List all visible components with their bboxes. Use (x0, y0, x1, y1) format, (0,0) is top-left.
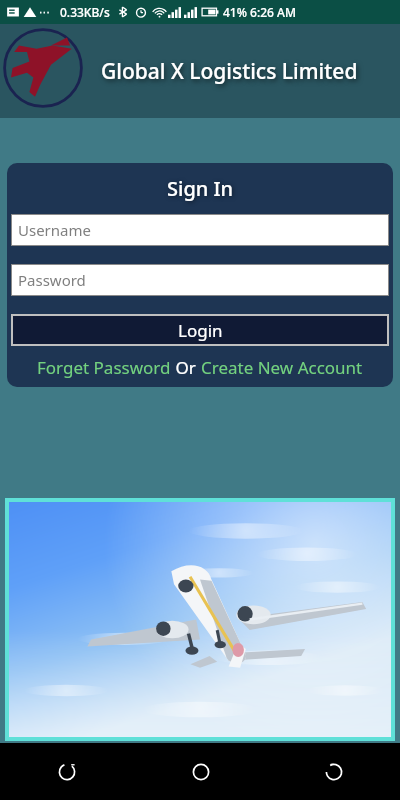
button[interactable]: Password (12, 265, 388, 295)
button[interactable]: Recents (0, 743, 134, 800)
staticText: ⋯ (39, 6, 50, 19)
staticText: Username (18, 220, 91, 240)
staticText: Sign In (167, 175, 234, 202)
staticText: Global X Logistics Limited (101, 57, 358, 86)
staticText: 41% 6:26 AM (223, 4, 296, 20)
staticText: Create New Account (201, 356, 363, 379)
button[interactable]: Home (134, 743, 267, 800)
staticText: Login (178, 319, 223, 342)
button[interactable]: Back (267, 743, 400, 800)
button[interactable]: Username (12, 215, 388, 245)
staticText: 0.33KB/s (60, 4, 110, 20)
staticText: Forget Password (37, 356, 171, 379)
staticText: Password (18, 270, 86, 290)
staticText: Or (171, 356, 201, 379)
button[interactable]: Forget Password (37, 356, 171, 379)
button[interactable]: Login (13, 316, 387, 344)
button[interactable]: Create New Account (201, 356, 363, 379)
button[interactable]: Global X Logistics logo (3, 28, 83, 108)
